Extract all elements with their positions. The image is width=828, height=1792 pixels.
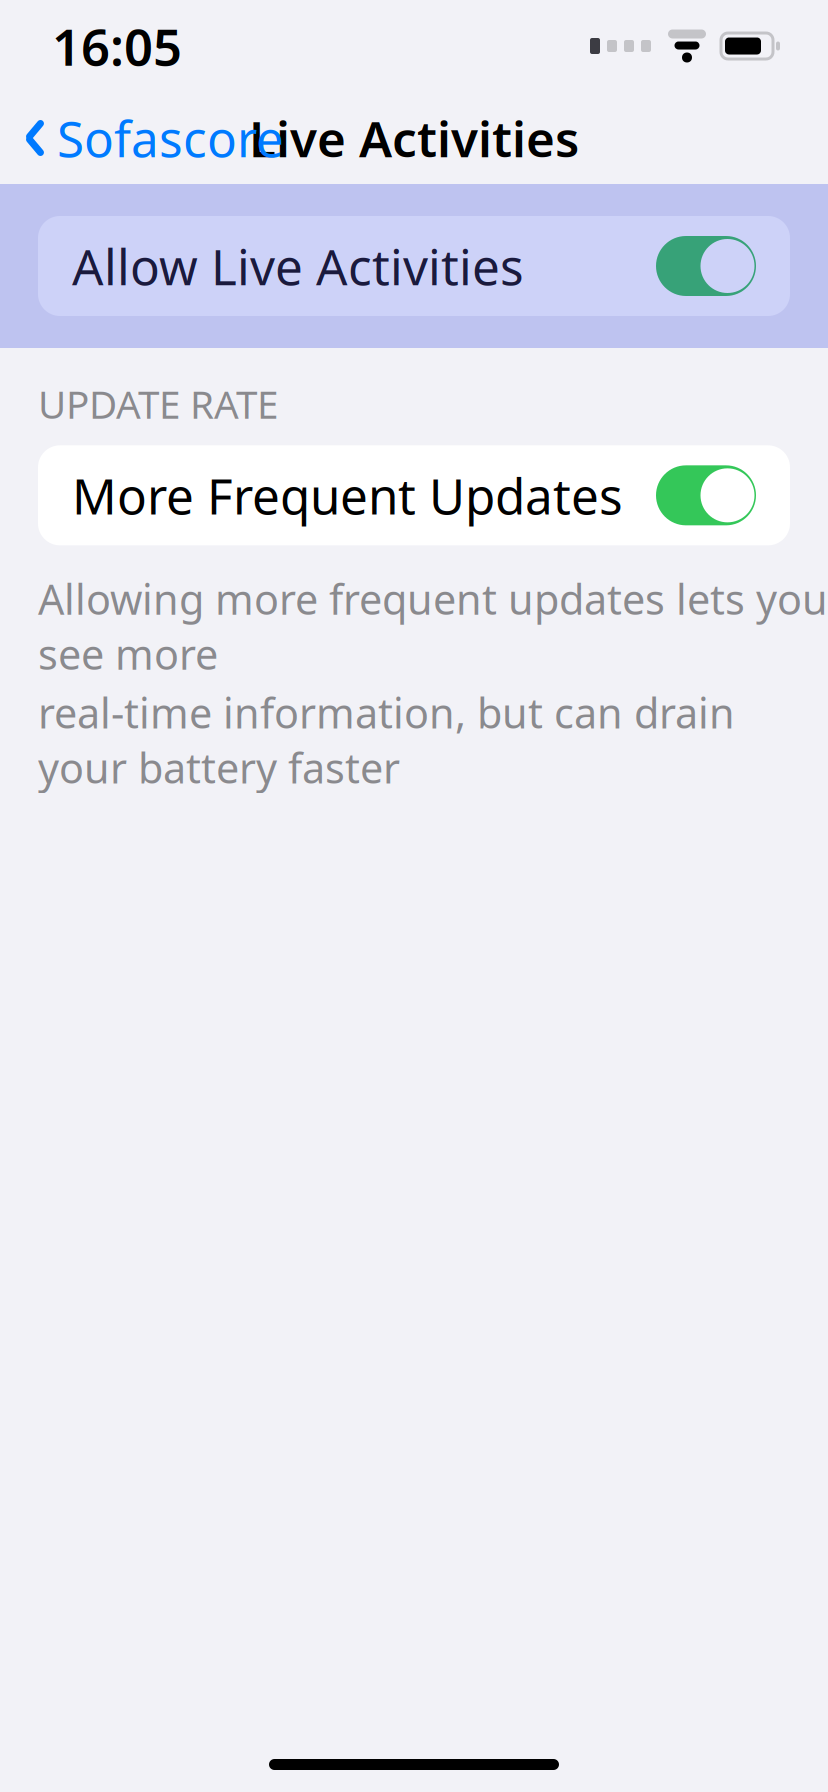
button[interactable]: More Frequent Updates <box>0 445 828 545</box>
staticText: UPDATE RATE <box>38 378 278 429</box>
button[interactable]: Allow Live Activities <box>0 184 828 348</box>
staticText: real-time information, but can drain you… <box>38 685 735 795</box>
staticText: Allow Live Activities <box>72 233 524 299</box>
staticText: 16:05 <box>52 12 182 80</box>
staticText: More Frequent Updates <box>72 463 623 528</box>
staticText: Live Activities <box>249 105 579 171</box>
staticText: Sofascore <box>57 105 284 171</box>
button[interactable]: Sofascore <box>0 93 284 183</box>
staticText: Allowing more frequent updates lets you … <box>38 571 828 681</box>
